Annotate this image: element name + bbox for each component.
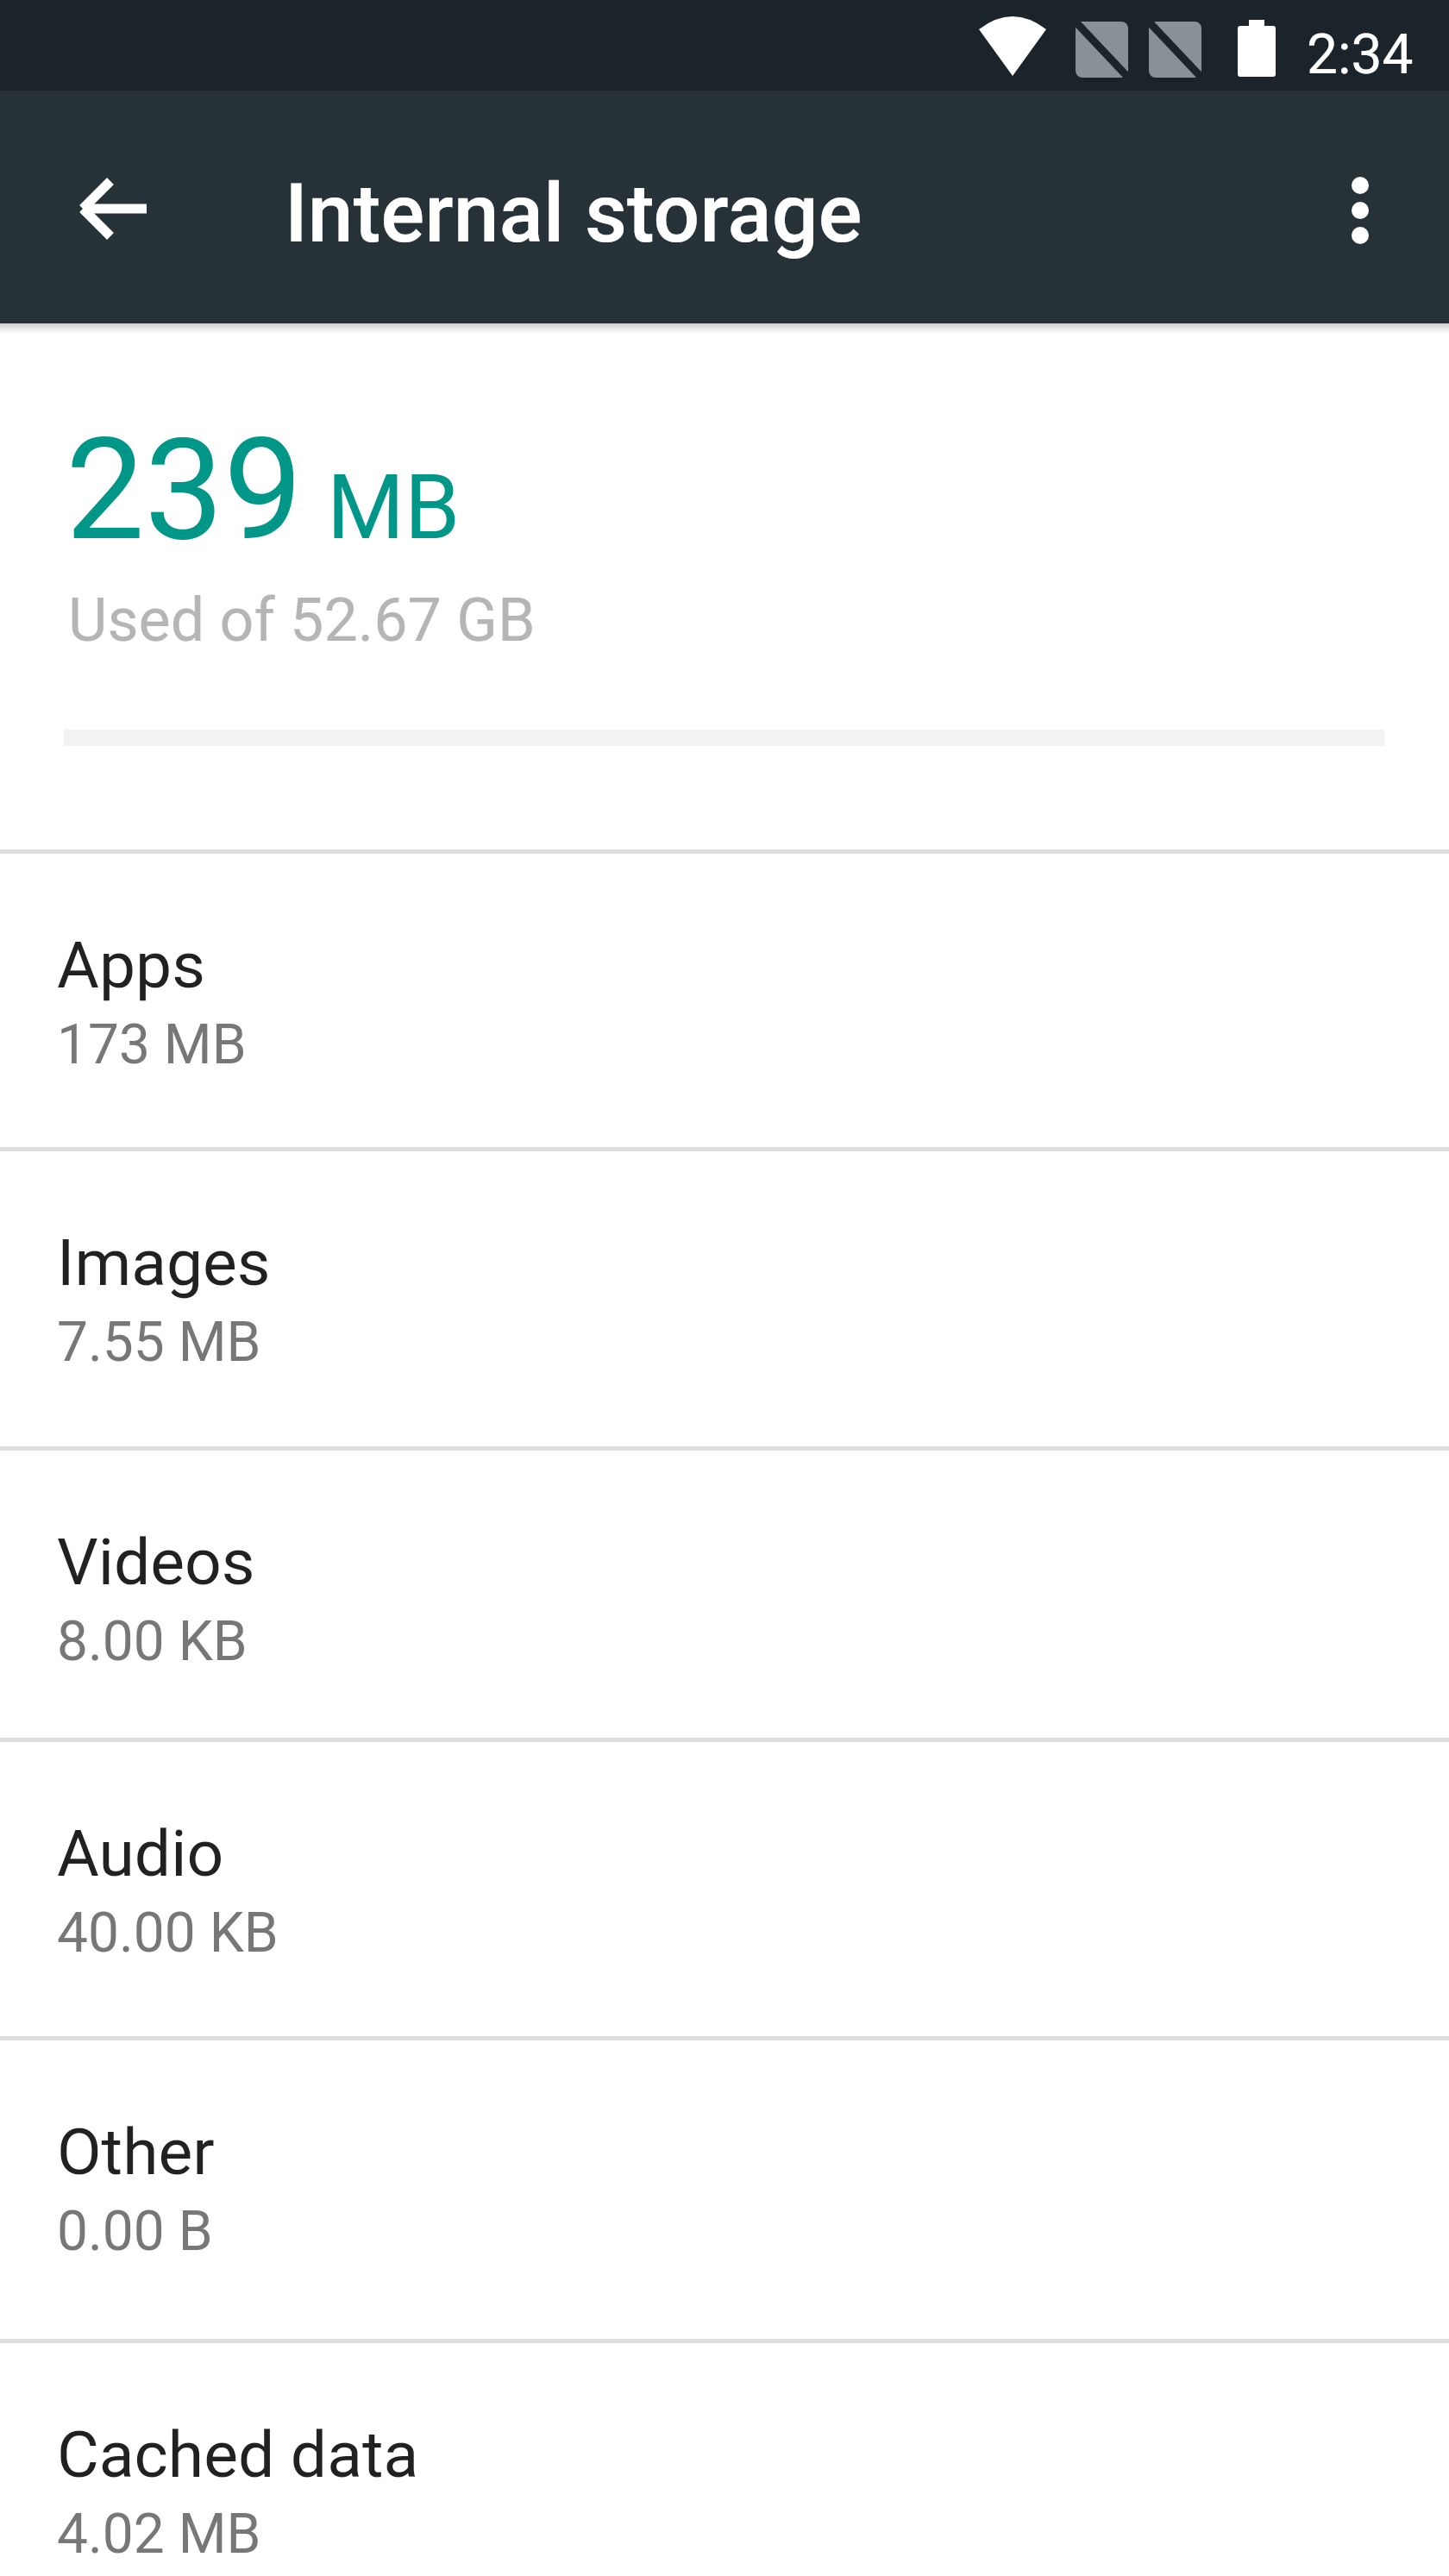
staticText: Images xyxy=(57,1225,271,1301)
staticText: 4.02 MB xyxy=(57,2502,261,2567)
button[interactable] xyxy=(63,155,166,259)
staticText: 40.00 KB xyxy=(57,1901,279,1965)
staticText: 239 xyxy=(66,408,303,573)
staticText: Cached data xyxy=(57,2416,419,2492)
staticText: 173 MB xyxy=(57,1012,247,1077)
staticText: Audio xyxy=(57,1815,224,1891)
button[interactable]: Images xyxy=(0,1147,1449,1446)
staticText: Internal storage xyxy=(285,166,862,261)
button[interactable] xyxy=(1308,155,1412,259)
staticText: Videos xyxy=(57,1524,255,1600)
staticText: Used of 52.67 GB xyxy=(68,585,536,655)
button[interactable]: Videos xyxy=(0,1446,1449,1738)
staticText: Other xyxy=(57,2114,215,2190)
staticText: 2:34 xyxy=(1307,22,1414,87)
staticText: 8.00 KB xyxy=(57,1609,248,1674)
button[interactable]: Audio xyxy=(0,1738,1449,2036)
staticText: 0.00 B xyxy=(57,2199,213,2264)
button[interactable]: Apps xyxy=(0,849,1449,1147)
staticText: Apps xyxy=(57,927,205,1003)
staticText: 7.55 MB xyxy=(57,1310,261,1375)
button[interactable]: Cached data xyxy=(0,2339,1449,2576)
button[interactable]: Other xyxy=(0,2036,1449,2339)
staticText: MB xyxy=(327,455,461,560)
